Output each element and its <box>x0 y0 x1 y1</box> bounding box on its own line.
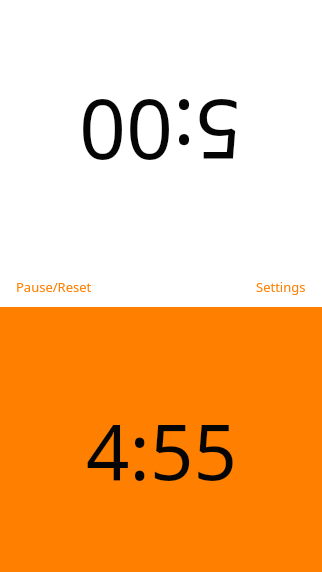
staticText: 4:55 <box>86 399 237 503</box>
button[interactable]: 4:55 <box>0 307 322 572</box>
staticText: Pause/Reset <box>16 278 92 296</box>
button[interactable]: Settings <box>161 266 322 307</box>
button[interactable]: 5:00 <box>0 0 322 266</box>
staticText: 5:00 <box>79 76 242 188</box>
button[interactable]: Pause/Reset <box>0 266 161 307</box>
staticText: Settings <box>256 278 306 296</box>
